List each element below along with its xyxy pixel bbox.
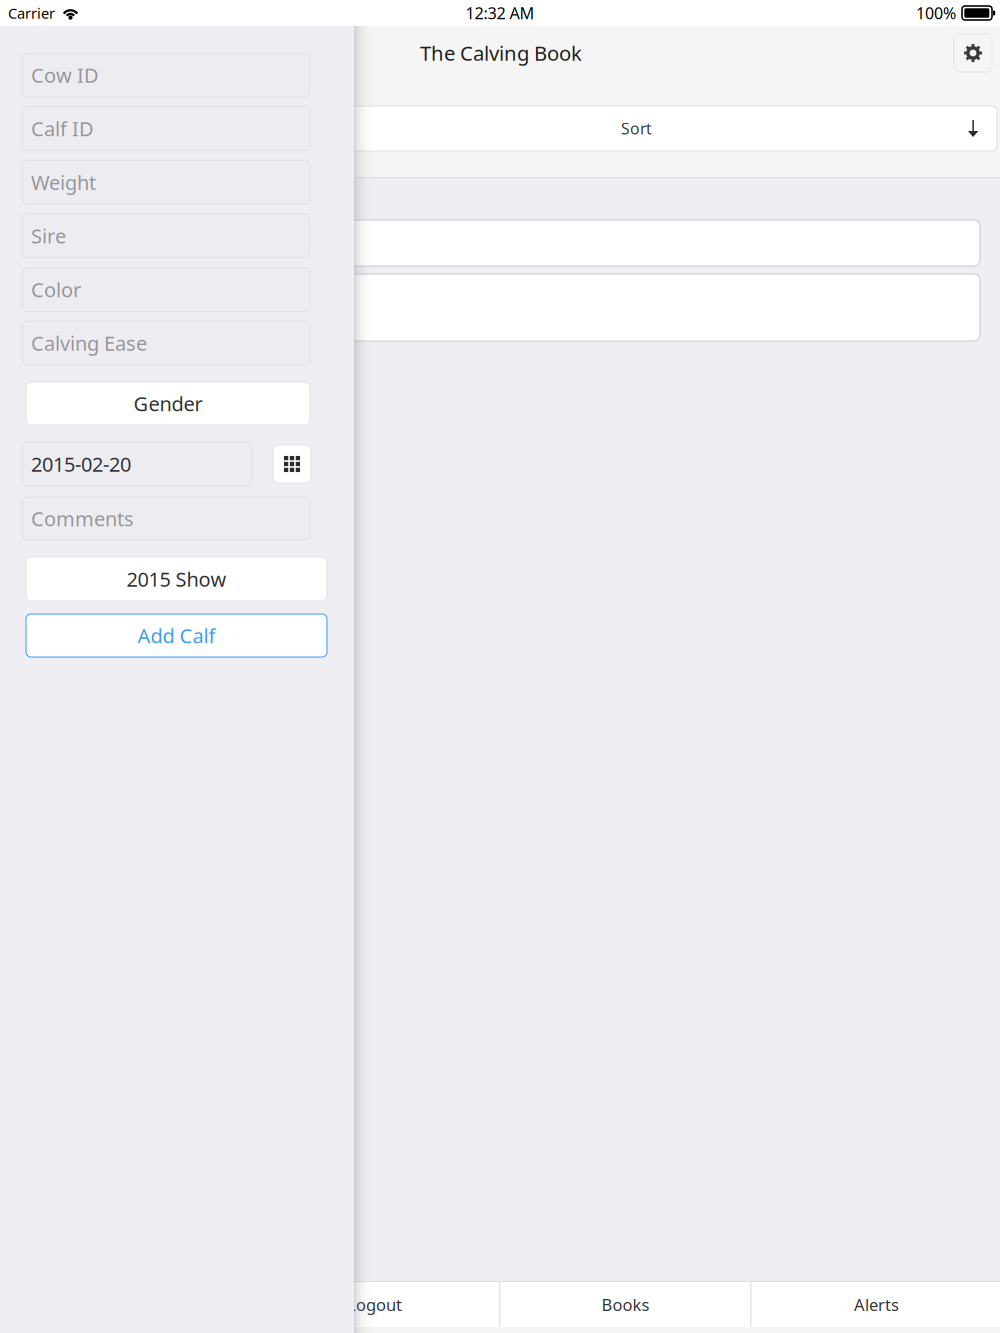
button[interactable]: Alerts <box>751 1282 1000 1327</box>
staticText: Calf ID <box>31 115 94 142</box>
staticText: Gender <box>133 390 202 417</box>
button[interactable]: Pick date <box>273 445 311 483</box>
staticText: 2015 Show <box>126 565 226 593</box>
staticText: Alerts <box>854 1293 899 1316</box>
button[interactable]: Add Calf <box>26 614 327 657</box>
staticText: 2015-02-20 <box>31 450 131 478</box>
button[interactable]: Books <box>500 1282 750 1327</box>
staticText: Calving Ease <box>31 329 147 357</box>
staticText: Add Calf <box>137 622 215 649</box>
staticText: The Calving Book <box>420 39 582 67</box>
staticText: Sire <box>31 222 66 249</box>
button[interactable]: 2015 Show <box>26 557 327 601</box>
staticText: Sort <box>621 118 652 139</box>
staticText: Books <box>601 1293 649 1316</box>
staticText: Cow ID <box>31 61 99 89</box>
button[interactable]: Settings <box>954 34 992 72</box>
staticText: Weight <box>31 169 96 196</box>
staticText: Logout <box>347 1293 402 1316</box>
staticText: 12:32 AM <box>465 2 534 24</box>
button[interactable]: Gender <box>26 382 310 425</box>
staticText: Carrier <box>8 3 55 23</box>
button[interactable]: Logout <box>249 1282 499 1327</box>
button[interactable]: Sort <box>18 106 997 151</box>
button[interactable]: List row <box>20 274 980 341</box>
button[interactable]: List row <box>20 220 980 266</box>
staticText: Color <box>31 276 81 303</box>
staticText: 100% <box>916 2 956 24</box>
staticText: Comments <box>31 505 134 532</box>
